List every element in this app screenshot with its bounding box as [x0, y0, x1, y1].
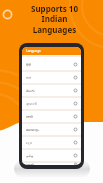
- other: Loading: [2, 9, 13, 20]
- staticText: മലയാളം: [26, 128, 40, 131]
- button[interactable]: ಕನ್ನಡ: [22, 137, 81, 148]
- staticText: हिंदी: [26, 63, 32, 67]
- staticText: தமிழ்: [26, 154, 34, 157]
- button[interactable]: हिंदी: [22, 59, 81, 70]
- staticText: తెలుగు: [26, 89, 35, 93]
- staticText: ਪੰਜਾਬੀ: [26, 163, 34, 165]
- button[interactable]: मराठी: [22, 111, 81, 122]
- staticText: বাংলা: [26, 76, 32, 79]
- button[interactable]: ગુજરાતી: [22, 98, 81, 109]
- staticText: ગુજરાતી: [26, 102, 37, 105]
- button[interactable]: தமிழ்: [22, 150, 81, 161]
- button[interactable]: ਪੰਜਾਬੀ: [22, 163, 81, 165]
- button[interactable]: বাংলা: [22, 72, 81, 83]
- button[interactable]: മലയാളം: [22, 124, 81, 135]
- button[interactable]: తెలుగు: [22, 85, 81, 96]
- staticText: Language: [26, 49, 41, 53]
- staticText: मराठी: [26, 115, 33, 119]
- staticText: Supports 10 Indian Languages: [13, 3, 96, 36]
- staticText: ಕನ್ನಡ: [26, 141, 32, 144]
